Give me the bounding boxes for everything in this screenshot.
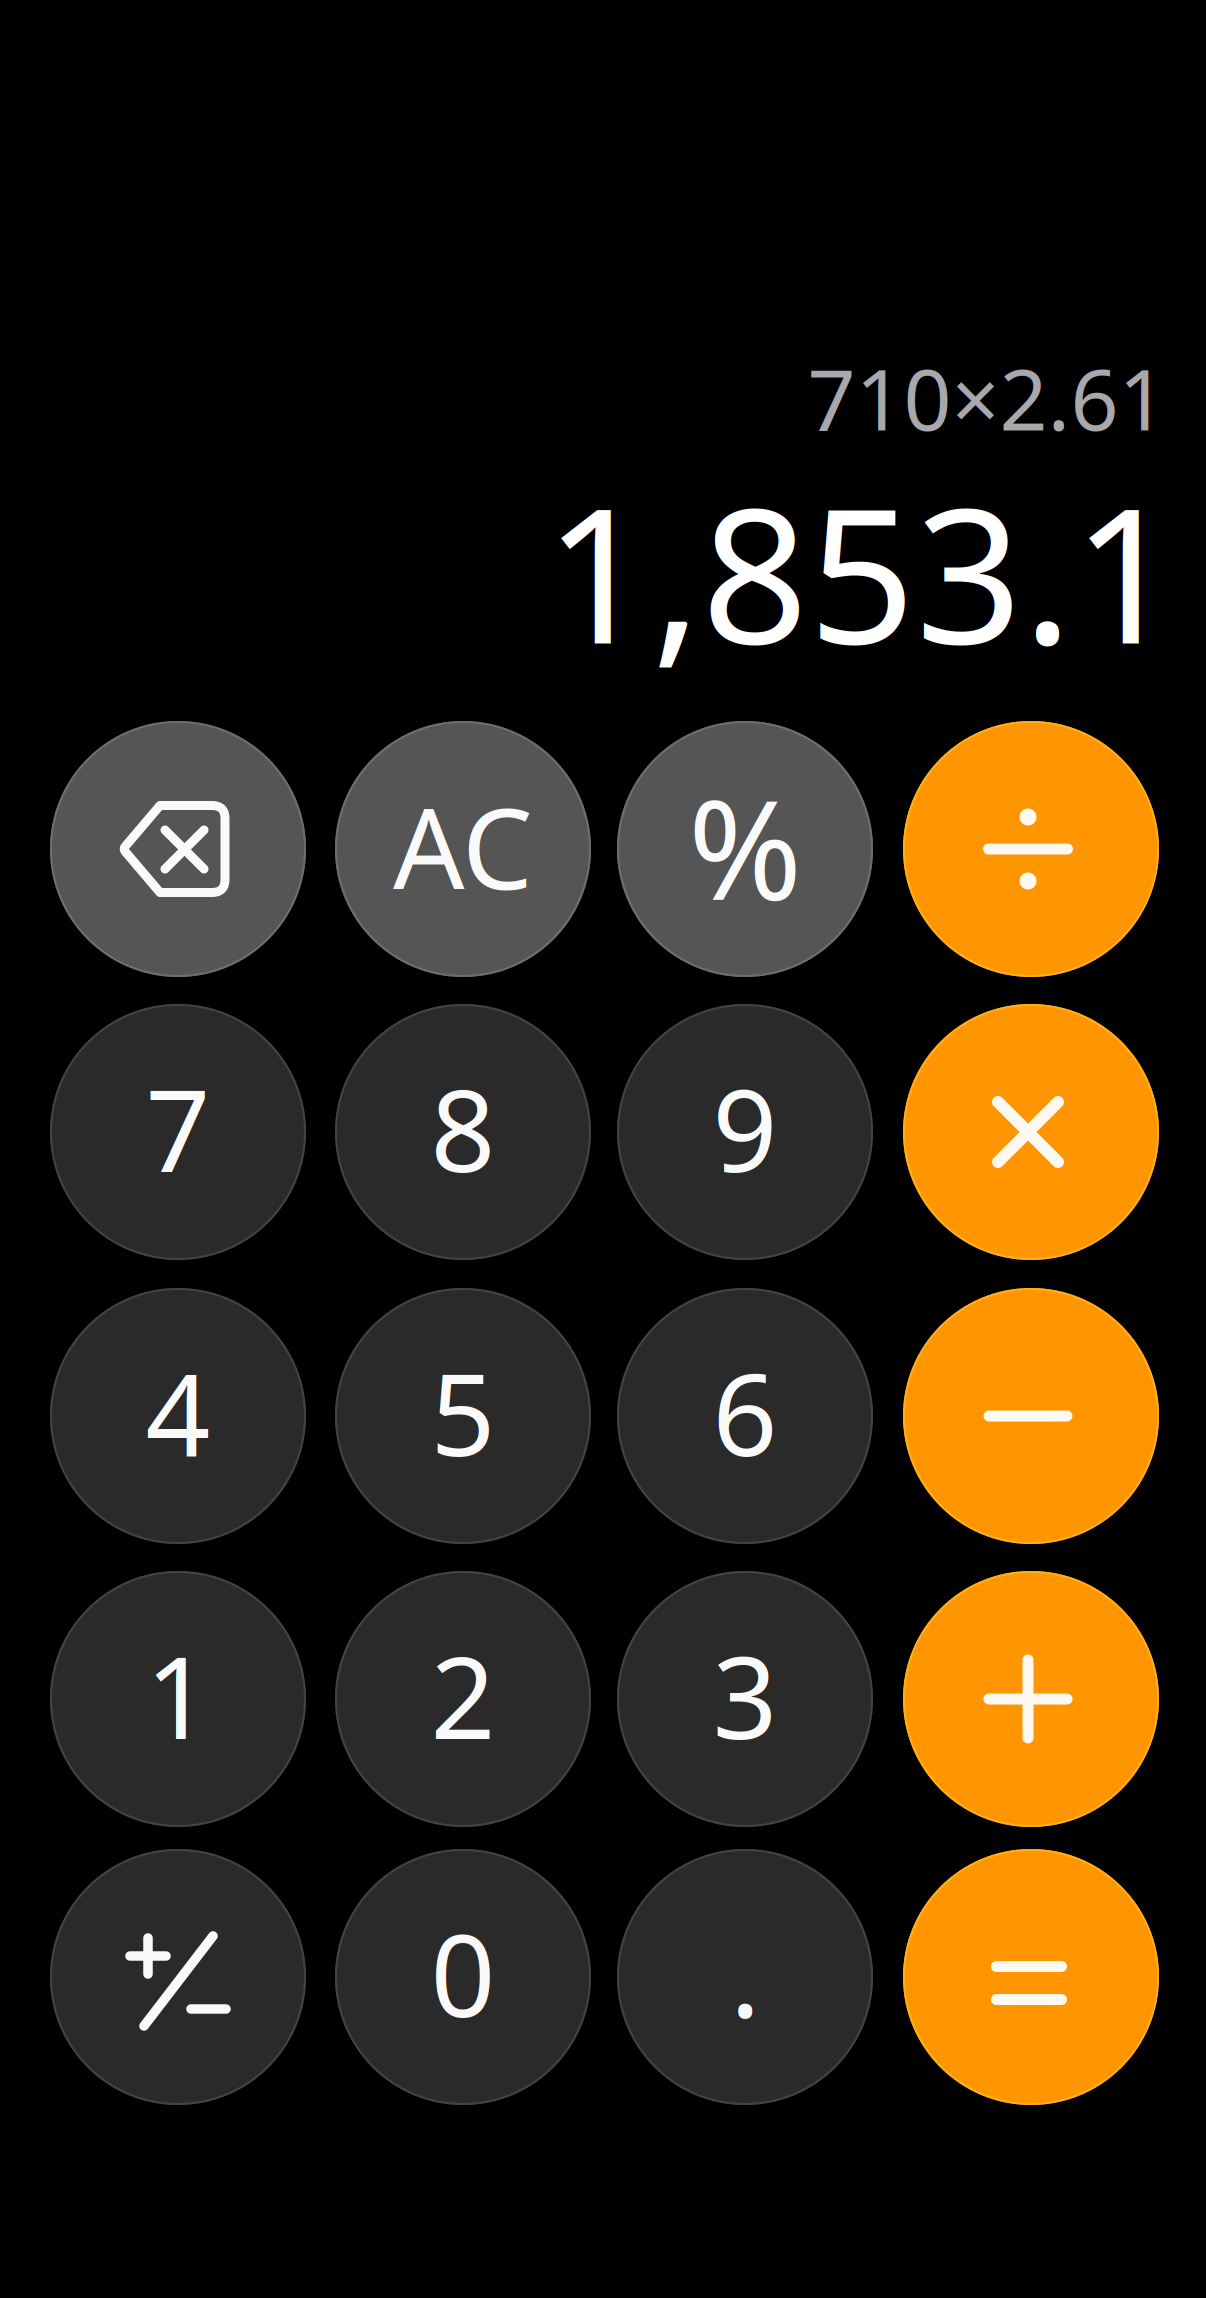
staticText: 710×2.61: [807, 342, 1166, 454]
staticText: 0: [430, 1898, 495, 2048]
staticText: 7: [145, 1053, 210, 1203]
staticText: 1,853.1: [544, 447, 1179, 695]
staticText: 8: [430, 1053, 495, 1203]
staticText: 1: [145, 1620, 210, 1770]
button[interactable]: Multiply: [903, 1004, 1159, 1260]
staticText: 5: [430, 1337, 495, 1487]
button[interactable]: 5: [335, 1288, 591, 1544]
button[interactable]: 7: [50, 1004, 306, 1260]
button[interactable]: All clear: [335, 721, 591, 977]
button[interactable]: 1: [50, 1571, 306, 1827]
button[interactable]: Divide: [903, 721, 1159, 977]
button[interactable]: 9: [617, 1004, 873, 1260]
button[interactable]: Minus: [903, 1288, 1159, 1544]
button[interactable]: 3: [617, 1571, 873, 1827]
staticText: 3: [712, 1620, 777, 1770]
button[interactable]: Percent: [617, 721, 873, 977]
button[interactable]: Toggle sign: [50, 1849, 306, 2105]
button[interactable]: Plus: [903, 1571, 1159, 1827]
button[interactable]: 6: [617, 1288, 873, 1544]
button[interactable]: 0: [335, 1849, 591, 2105]
staticText: %: [688, 756, 802, 938]
button[interactable]: 8: [335, 1004, 591, 1260]
button[interactable]: Delete: [50, 721, 306, 977]
button[interactable]: 4: [50, 1288, 306, 1544]
staticText: 6: [712, 1337, 777, 1487]
staticText: AC: [393, 772, 533, 920]
staticText: 4: [145, 1337, 210, 1487]
button[interactable]: 2: [335, 1571, 591, 1827]
button[interactable]: Decimal point: [617, 1849, 873, 2105]
button[interactable]: Equals: [903, 1849, 1159, 2105]
staticText: 9: [712, 1053, 777, 1203]
staticText: .: [730, 1898, 760, 2048]
staticText: 2: [430, 1620, 495, 1770]
